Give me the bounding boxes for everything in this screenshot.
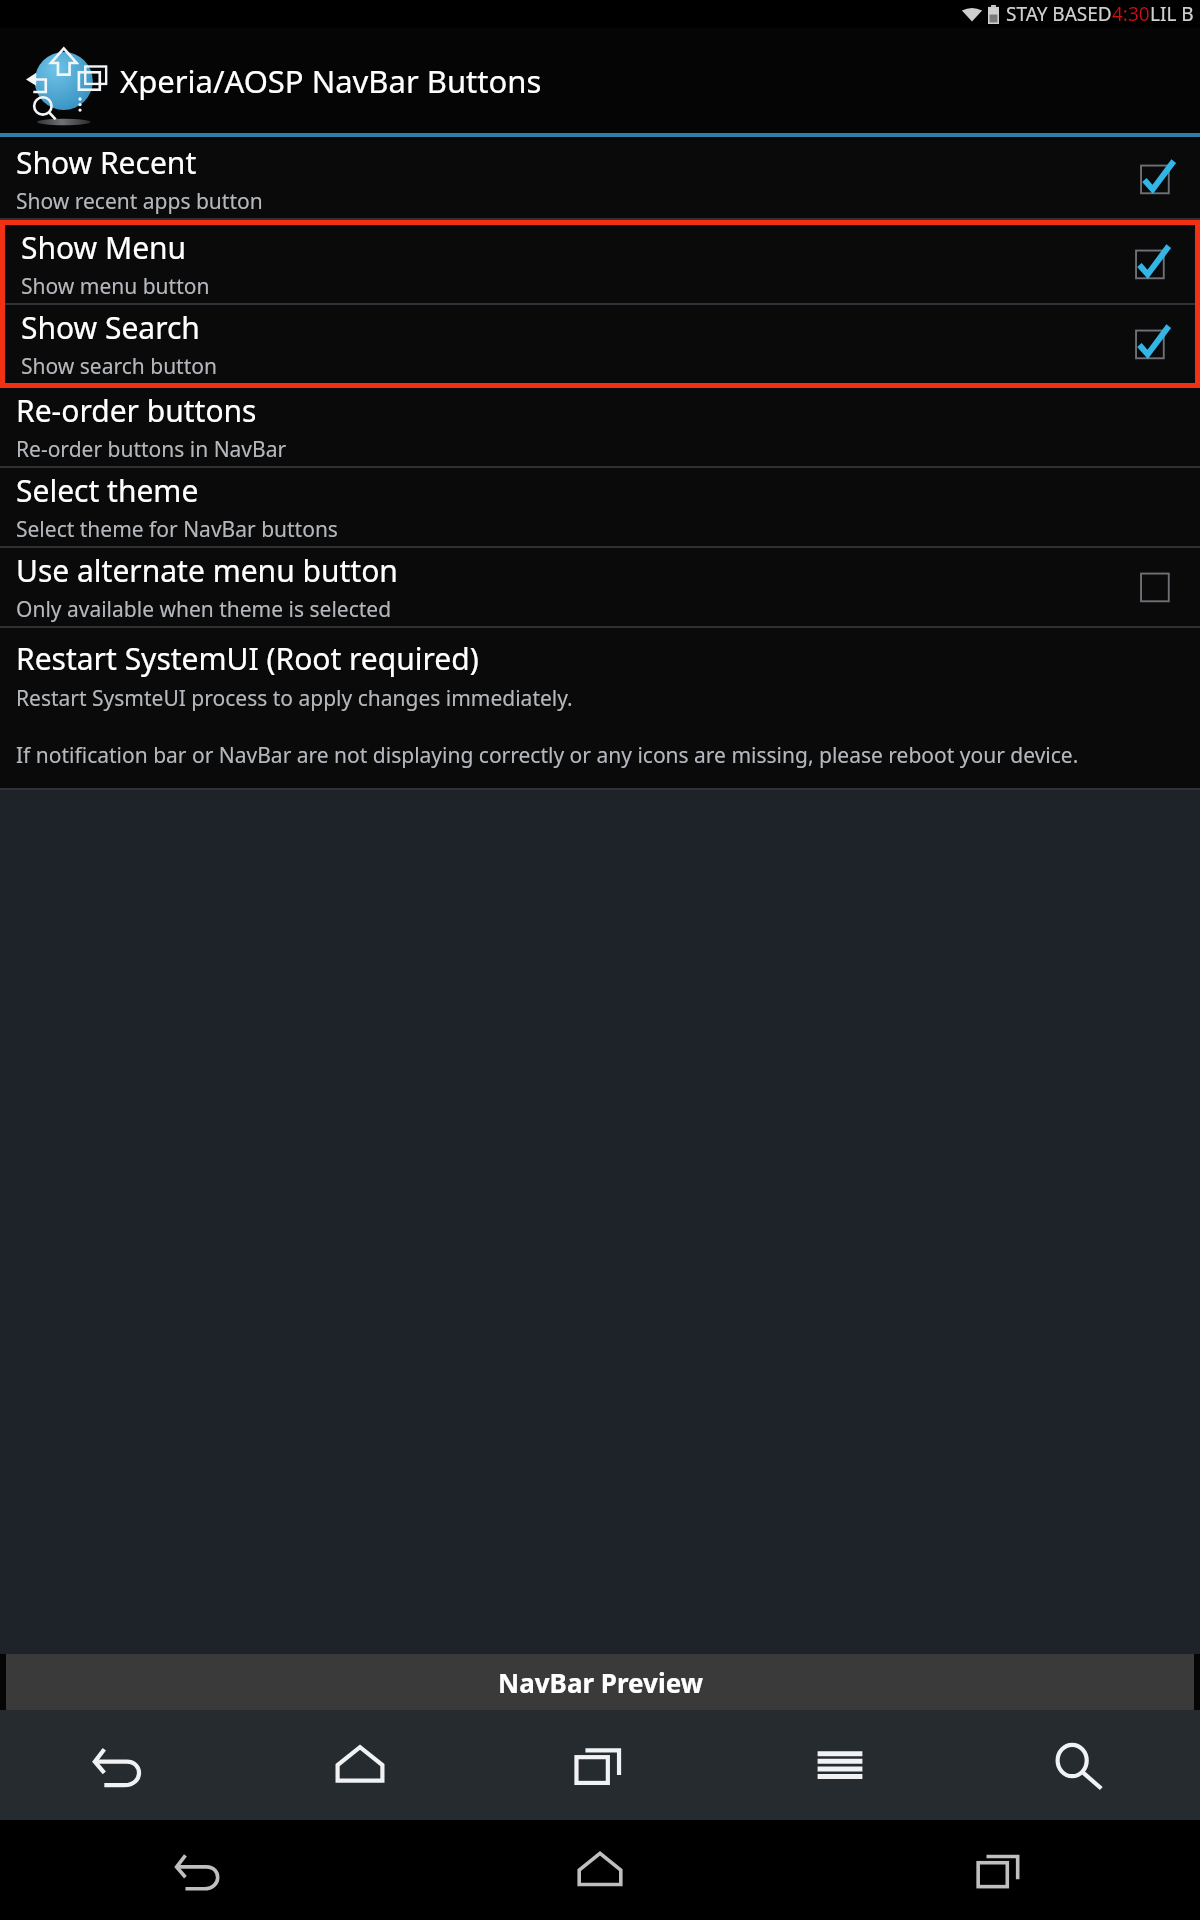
button[interactable]: Use alternate menu button (0, 548, 1200, 626)
staticText: Show Menu (21, 227, 187, 268)
staticText: Only available when theme is selected (16, 595, 392, 624)
staticText: Xperia/AOSP NavBar Buttons (120, 60, 542, 102)
staticText: Restart SystemUI (Root required) (16, 638, 479, 679)
button[interactable]: Back (0, 1820, 400, 1920)
button[interactable]: Home (240, 1710, 480, 1820)
staticText: Show search button (21, 352, 217, 381)
staticText: Restart SysmteUI process to apply change… (16, 684, 573, 713)
button[interactable]: Select theme (0, 468, 1200, 546)
staticText: Show Recent (16, 142, 197, 183)
button[interactable]: Show Recent (0, 140, 1200, 218)
button[interactable]: Menu (720, 1710, 960, 1820)
staticText: Select theme (16, 470, 199, 511)
button[interactable]: Home (400, 1820, 800, 1920)
button[interactable]: Back (0, 1710, 240, 1820)
button[interactable]: Re-order buttons (0, 388, 1200, 466)
staticText: Show recent apps button (16, 187, 263, 216)
staticText: LIL B (1150, 1, 1194, 27)
staticText: STAY BASED (1006, 1, 1112, 27)
button[interactable]: Recents (800, 1820, 1200, 1920)
staticText: Re-order buttons (16, 390, 257, 431)
button[interactable]: Show Menu (5, 225, 1195, 303)
staticText: Re-order buttons in NavBar (16, 435, 287, 464)
staticText: Show Search (21, 307, 200, 348)
staticText: Show menu button (21, 272, 210, 301)
button[interactable]: Show Search (5, 305, 1195, 383)
button[interactable]: NavBar Preview (6, 1654, 1194, 1710)
button[interactable]: Search (960, 1710, 1200, 1820)
staticText: If notification bar or NavBar are not di… (16, 741, 1137, 770)
staticText: Use alternate menu button (16, 550, 398, 591)
staticText: Select theme for NavBar buttons (16, 515, 338, 544)
staticText: NavBar Preview (498, 1665, 703, 1700)
button[interactable]: Restart SystemUI (Root required) (0, 628, 1200, 788)
staticText: 4:30 (1112, 1, 1150, 27)
button[interactable]: Recents (480, 1710, 720, 1820)
